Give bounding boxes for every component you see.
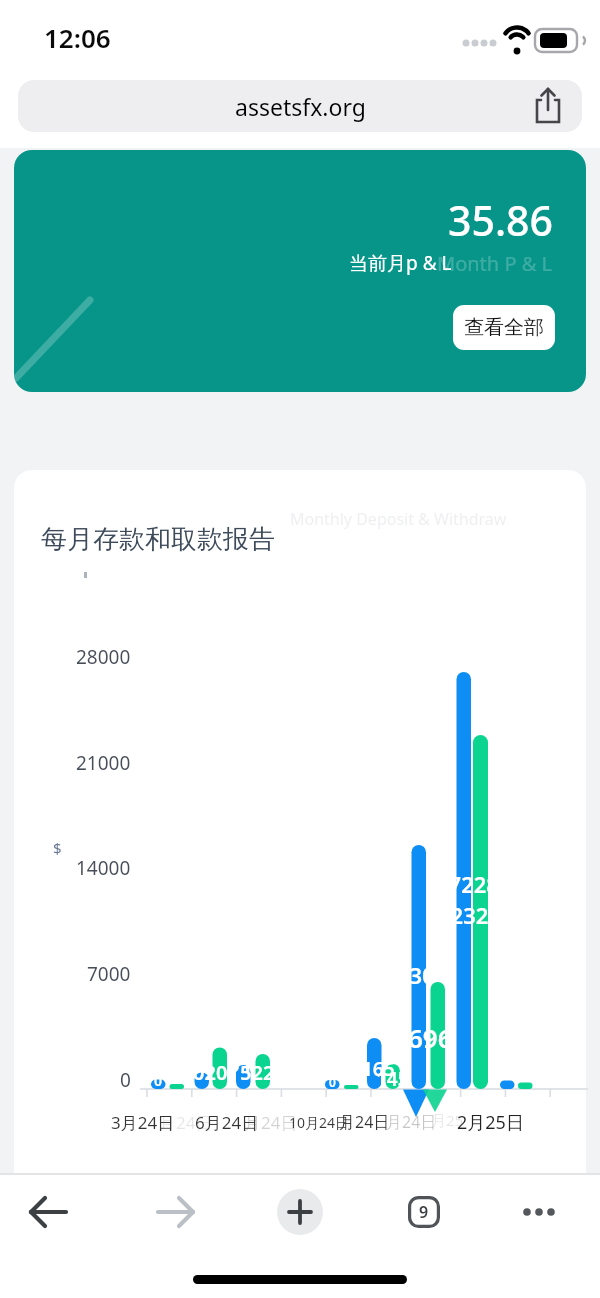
staticText: 月24日 — [244, 1111, 298, 1134]
button[interactable]: assetsfx.org — [18, 80, 582, 132]
staticText: assetsfx.org — [235, 91, 366, 122]
staticText: 145 — [376, 1066, 409, 1092]
staticText: 查看全部 — [464, 315, 544, 340]
button[interactable] — [24, 1190, 72, 1234]
button[interactable] — [515, 1196, 565, 1228]
staticText: 61 — [226, 1046, 254, 1079]
staticText: 14000 — [76, 855, 131, 881]
staticText: 21000 — [76, 750, 131, 776]
staticText: 每月存款和取款报告 — [41, 523, 275, 556]
staticText: 月24日 — [339, 1111, 390, 1133]
staticText: 当前月p & L — [349, 250, 452, 276]
staticText: 020 — [193, 1059, 228, 1086]
staticText: 22321 — [438, 900, 501, 930]
staticText: Monthly Deposit & Withdraw — [290, 508, 507, 530]
staticText: 0 — [329, 1074, 336, 1090]
staticText: 6月24日 — [195, 1111, 259, 1134]
button[interactable] — [152, 1190, 200, 1234]
staticText: 5225 — [240, 1059, 286, 1086]
button[interactable]: 查看全部 — [453, 305, 555, 350]
staticText: 0 — [154, 1071, 163, 1090]
staticText: 月24日 — [159, 1111, 213, 1134]
staticText: 35.86 — [448, 192, 553, 248]
staticText: 0 — [120, 1067, 131, 1093]
staticText: 696 — [408, 1020, 453, 1055]
staticText: 9 — [419, 1201, 429, 1223]
staticText: 17228 — [436, 869, 499, 899]
staticText: 10月24日 — [289, 1113, 350, 1132]
staticText: 165 — [362, 1056, 395, 1082]
staticText: $ — [53, 838, 62, 858]
button[interactable]: 9 — [408, 1196, 440, 1228]
staticText: 2月25日 — [457, 1110, 524, 1135]
staticText: 530 — [397, 960, 435, 990]
button[interactable] — [277, 1189, 323, 1235]
staticText: 28000 — [76, 644, 131, 670]
staticText: 月24日 — [386, 1111, 437, 1133]
staticText: 月25 — [431, 1110, 464, 1130]
staticText: Month P & L — [437, 250, 552, 277]
staticText: 12:06 — [44, 20, 111, 55]
staticText: 3月24日 — [111, 1111, 175, 1134]
staticText: 7000 — [87, 961, 131, 987]
